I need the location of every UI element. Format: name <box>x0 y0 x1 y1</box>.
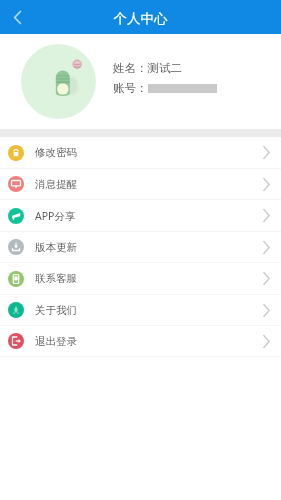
button[interactable]: Avatar <box>21 44 96 119</box>
staticText: 联系客服 <box>35 272 77 285</box>
staticText: 退出登录 <box>35 335 77 348</box>
button[interactable]: 联系客服 <box>0 263 281 295</box>
staticText: 姓名：测试二 <box>113 61 182 75</box>
button[interactable]: 关于我们 <box>0 295 281 326</box>
staticText: 个人中心 <box>0 10 281 27</box>
button[interactable]: APP分享 <box>0 200 281 232</box>
staticText: APP分享 <box>35 209 76 223</box>
button[interactable]: 退出登录 <box>0 326 281 357</box>
button[interactable]: 修改密码 <box>0 137 281 169</box>
staticText: 消息提醒 <box>35 178 77 191</box>
staticText: 账号： <box>113 81 148 95</box>
staticText: 关于我们 <box>35 304 77 317</box>
button[interactable]: 版本更新 <box>0 232 281 263</box>
staticText: 修改密码 <box>35 146 77 159</box>
button[interactable]: Back <box>0 0 35 34</box>
button[interactable]: 消息提醒 <box>0 169 281 200</box>
staticText: 版本更新 <box>35 241 77 254</box>
